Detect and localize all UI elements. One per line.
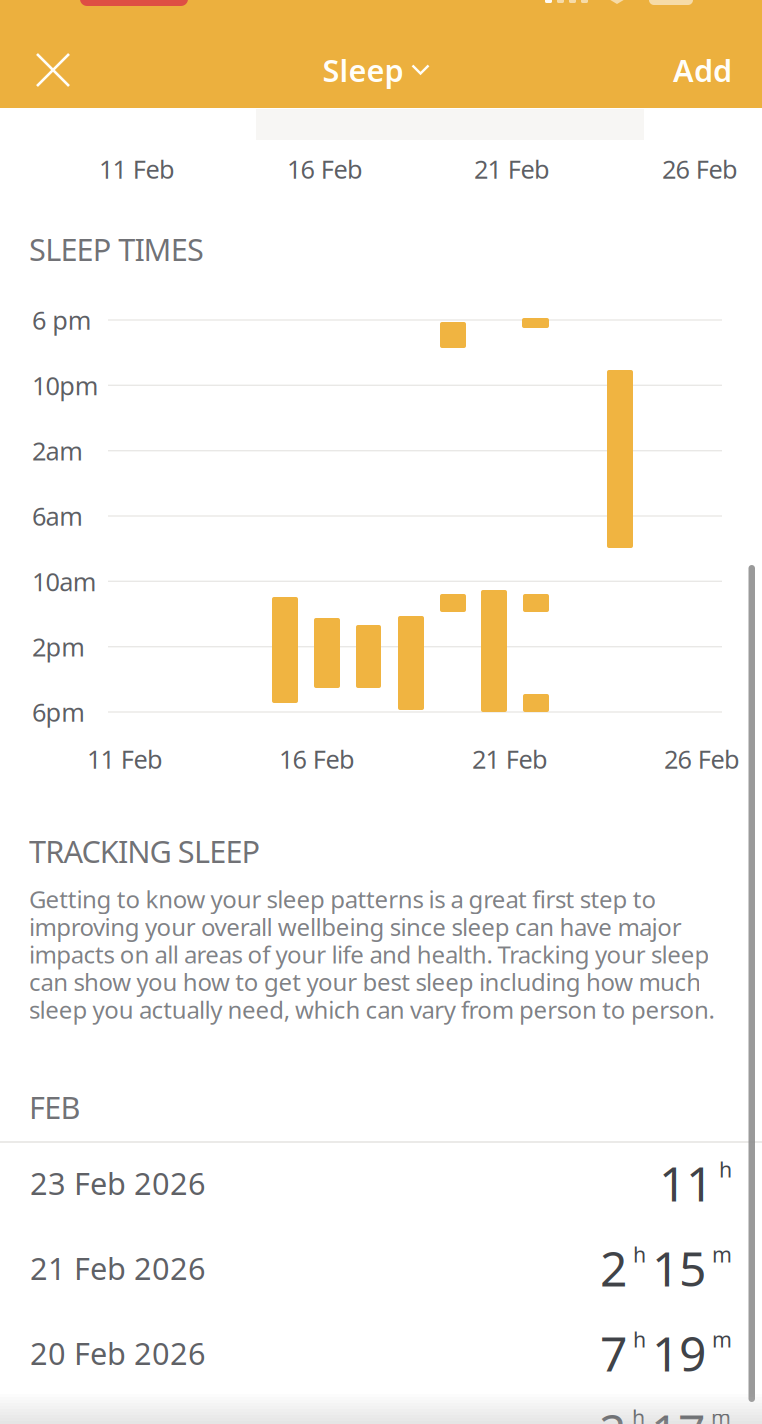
staticText: FEB (29, 1087, 80, 1127)
staticText: 21 Feb (472, 742, 548, 776)
staticText: 20 Feb 2026 (30, 1333, 206, 1373)
staticText: improving your overall wellbeing since s… (29, 911, 682, 943)
staticText: 26 Feb (664, 742, 740, 776)
button[interactable]: 23 Feb 2026 (30, 1140, 732, 1225)
staticText: 10am (32, 564, 97, 598)
staticText: 11 Feb (87, 742, 163, 776)
staticText: 23 Feb 2026 (30, 1163, 206, 1203)
button[interactable]: 21 Feb 2026 (30, 1225, 732, 1310)
staticText: sleep you actually need, which can vary … (29, 993, 715, 1025)
staticText: 7 h 19 m (600, 1321, 732, 1385)
staticText: 21 Feb (474, 152, 550, 186)
staticText: TRACKING SLEEP (29, 831, 261, 871)
staticText: 11 Feb (99, 152, 175, 186)
staticText: can show you how to get your best sleep … (29, 966, 701, 998)
staticText: 16 Feb (287, 152, 363, 186)
staticText: 11 h (659, 1151, 732, 1215)
button[interactable]: 20 Feb 2026 (30, 1310, 732, 1395)
staticText: 6am (32, 499, 83, 533)
staticText: Getting to know your sleep patterns is a… (29, 883, 656, 915)
button[interactable]: Close (23, 40, 83, 100)
staticText: Add (673, 50, 732, 90)
staticText: 21 Feb 2026 (30, 1248, 206, 1288)
button[interactable]: Sleep (322, 50, 429, 90)
staticText: 2am (32, 434, 83, 467)
staticText: Sleep (322, 50, 403, 90)
staticText: 26 Feb (662, 152, 738, 186)
staticText: SLEEP TIMES (29, 229, 204, 269)
staticText: 2 h 17 m (599, 1399, 731, 1424)
staticText: 6pm (32, 695, 85, 729)
staticText: 6 pm (32, 303, 92, 337)
staticText: impacts on all areas of your life and he… (29, 938, 709, 970)
button[interactable]: Add (612, 50, 732, 90)
staticText: 10pm (32, 368, 99, 402)
staticText: 2pm (32, 630, 85, 663)
staticText: 16 Feb (279, 742, 355, 776)
staticText: 2 h 15 m (600, 1236, 732, 1300)
